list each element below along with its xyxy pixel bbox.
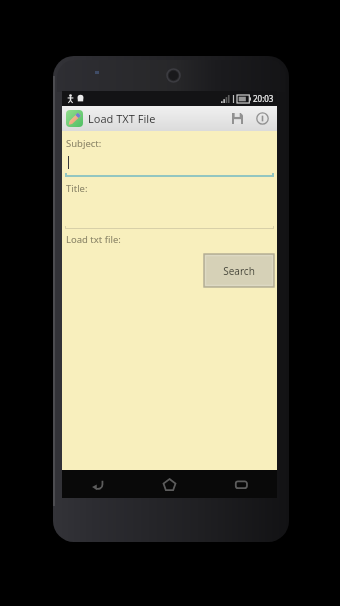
button[interactable]: Recent apps [205,470,277,498]
button[interactable] [65,153,274,177]
button[interactable]: Info [250,106,275,131]
button[interactable]: Home [133,470,205,498]
staticText: Load txt file: [66,233,121,246]
button[interactable]: Search [204,254,274,287]
staticText: Load TXT File [88,111,156,126]
button[interactable] [65,198,274,229]
staticText: Title: [66,182,88,195]
button[interactable]: Save [225,106,250,131]
staticText: 20:03 [253,93,274,104]
staticText: Search [223,264,255,278]
staticText: Subject: [66,137,102,150]
button[interactable]: Back [62,470,133,498]
